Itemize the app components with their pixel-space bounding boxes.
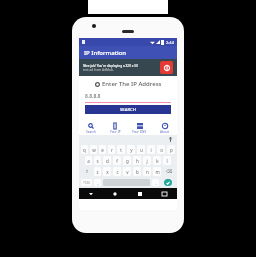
- button[interactable]: l: [163, 156, 171, 165]
- button[interactable]: Your DNS: [127, 122, 152, 135]
- staticText: k: [156, 158, 159, 164]
- button[interactable]: r: [108, 145, 115, 154]
- staticText: ?123: [83, 181, 90, 185]
- button[interactable]: Home: [103, 188, 127, 199]
- button[interactable]: m: [153, 167, 161, 176]
- staticText: o: [160, 147, 163, 153]
- button[interactable]: q: [81, 145, 88, 154]
- staticText: .: [155, 180, 157, 186]
- button[interactable]: Nice job! You're displaying a 320 x 50: [79, 59, 177, 76]
- button[interactable]: p: [167, 145, 175, 154]
- staticText: ⌫: [166, 169, 173, 174]
- button[interactable]: ,: [94, 179, 101, 186]
- button[interactable]: s: [94, 156, 101, 165]
- staticText: Your IP: [110, 130, 121, 134]
- staticText: q: [83, 147, 86, 153]
- button[interactable]: Backspace: [163, 167, 175, 176]
- button[interactable]: .: [152, 179, 159, 186]
- staticText: 2:44: [166, 40, 174, 45]
- button[interactable]: y: [127, 145, 135, 154]
- staticText: z: [96, 169, 99, 175]
- staticText: w: [92, 147, 96, 153]
- button[interactable]: SEARCH: [85, 105, 171, 114]
- staticText: 8.8.8.8: [85, 93, 101, 100]
- staticText: ,: [97, 180, 99, 186]
- staticText: i: [150, 147, 152, 153]
- staticText: Enter The IP Address: [102, 80, 162, 88]
- button[interactable]: f: [113, 156, 121, 165]
- button[interactable]: About: [152, 122, 177, 135]
- staticText: d: [106, 158, 109, 164]
- button[interactable]: g: [123, 156, 131, 165]
- button[interactable]: Recents: [127, 188, 152, 199]
- staticText: u: [140, 147, 143, 153]
- staticText: s: [96, 158, 99, 164]
- staticText: t: [120, 147, 122, 153]
- staticText: e: [101, 147, 104, 153]
- button[interactable]: Your IP: [103, 122, 127, 135]
- button[interactable]: e: [99, 145, 106, 154]
- staticText: a: [87, 158, 90, 164]
- staticText: p: [170, 147, 173, 153]
- button[interactable]: z: [94, 167, 101, 176]
- staticText: b: [136, 169, 139, 175]
- staticText: c: [116, 169, 119, 175]
- button[interactable]: Back: [79, 188, 103, 199]
- button[interactable]: a: [85, 156, 92, 165]
- staticText: test ad from AdMob.: [83, 68, 114, 72]
- staticText: j: [146, 158, 148, 164]
- button[interactable]: Shift: [81, 167, 92, 176]
- staticText: n: [146, 169, 149, 175]
- button[interactable]: i: [147, 145, 155, 154]
- staticText: x: [106, 169, 109, 175]
- staticText: l: [166, 158, 168, 164]
- other: Ad: [160, 61, 173, 74]
- staticText: Nice job! You're displaying a 320 x 50: [83, 64, 139, 68]
- staticText: IP Information: [84, 49, 127, 57]
- button[interactable]: b: [133, 167, 141, 176]
- button[interactable]: h: [133, 156, 141, 165]
- staticText: y: [130, 147, 133, 153]
- button[interactable]: k: [153, 156, 161, 165]
- staticText: Your DNS: [132, 130, 147, 134]
- staticText: m: [155, 169, 160, 175]
- staticText: SEARCH: [120, 107, 136, 113]
- button[interactable]: x: [103, 167, 111, 176]
- staticText: r: [111, 147, 113, 153]
- staticText: v: [126, 169, 129, 175]
- button[interactable]: Enter: [164, 179, 172, 186]
- button[interactable]: u: [137, 145, 145, 154]
- button[interactable]: v: [123, 167, 131, 176]
- button[interactable]: o: [157, 145, 165, 154]
- button[interactable]: c: [113, 167, 121, 176]
- button[interactable]: Search: [79, 122, 103, 135]
- button[interactable]: n: [143, 167, 151, 176]
- staticText: g: [126, 158, 129, 164]
- button[interactable]: Keyboard: [152, 188, 177, 199]
- staticText: f: [116, 158, 118, 164]
- button[interactable]: j: [143, 156, 151, 165]
- staticText: About: [160, 130, 170, 134]
- button[interactable]: ?123: [81, 179, 92, 186]
- button[interactable]: d: [103, 156, 111, 165]
- button[interactable]: w: [90, 145, 97, 154]
- staticText: h: [136, 158, 139, 164]
- staticText: Search: [86, 130, 97, 134]
- button[interactable]: t: [117, 145, 125, 154]
- staticText: ⇧: [85, 169, 89, 174]
